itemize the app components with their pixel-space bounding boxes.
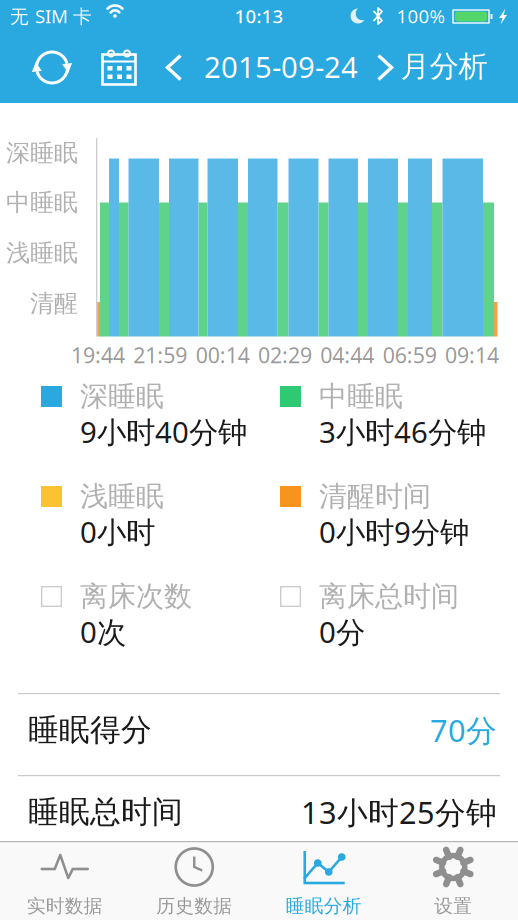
- button[interactable]: 前一天: [157, 45, 191, 89]
- staticText: 睡眠总时间: [28, 793, 183, 831]
- staticText: 04:44: [320, 341, 374, 369]
- staticText: 中睡眠: [6, 188, 78, 217]
- staticText: 无 SIM 卡: [10, 4, 92, 28]
- staticText: 13小时25分钟: [301, 792, 497, 832]
- button[interactable]: 历史数据: [130, 842, 259, 919]
- staticText: 离床总时间: [319, 579, 459, 614]
- staticText: 0次: [80, 612, 126, 651]
- staticText: 00:14: [196, 341, 250, 369]
- staticText: 历史数据: [156, 894, 232, 917]
- staticText: 浅睡眠: [80, 479, 164, 514]
- staticText: 离床次数: [80, 579, 192, 614]
- staticText: 设置: [434, 894, 472, 917]
- staticText: 深睡眠: [6, 138, 78, 168]
- button[interactable]: 刷新: [26, 41, 78, 93]
- staticText: 0小时: [80, 512, 155, 551]
- staticText: 清醒: [30, 289, 78, 318]
- staticText: 70分: [430, 710, 497, 750]
- staticText: 06:59: [383, 341, 437, 369]
- staticText: 清醒时间: [319, 479, 431, 514]
- staticText: 2015-09-24: [204, 47, 358, 86]
- staticText: 睡眠分析: [286, 894, 362, 917]
- staticText: 实时数据: [27, 894, 103, 917]
- staticText: 10:13: [234, 4, 283, 28]
- staticText: 浅睡眠: [6, 238, 78, 268]
- staticText: 19:44: [71, 341, 125, 369]
- button[interactable]: 实时数据: [0, 842, 129, 919]
- staticText: 月分析: [400, 48, 487, 84]
- staticText: 0分: [319, 612, 365, 651]
- staticText: 0小时9分钟: [319, 512, 469, 551]
- staticText: 09:14: [445, 341, 499, 369]
- staticText: 21:59: [133, 341, 187, 369]
- button[interactable]: 月分析: [400, 44, 487, 88]
- staticText: 睡眠得分: [28, 711, 152, 749]
- staticText: 3小时46分钟: [319, 412, 486, 451]
- staticText: 100%: [396, 4, 445, 28]
- staticText: 深睡眠: [80, 379, 164, 414]
- staticText: 9小时40分钟: [80, 412, 247, 451]
- button[interactable]: 设置: [389, 842, 518, 919]
- staticText: 02:29: [258, 341, 312, 369]
- button[interactable]: 后一天: [371, 45, 399, 89]
- button[interactable]: 睡眠分析: [259, 842, 388, 919]
- staticText: 中睡眠: [319, 379, 403, 414]
- button[interactable]: 日历: [95, 43, 143, 91]
